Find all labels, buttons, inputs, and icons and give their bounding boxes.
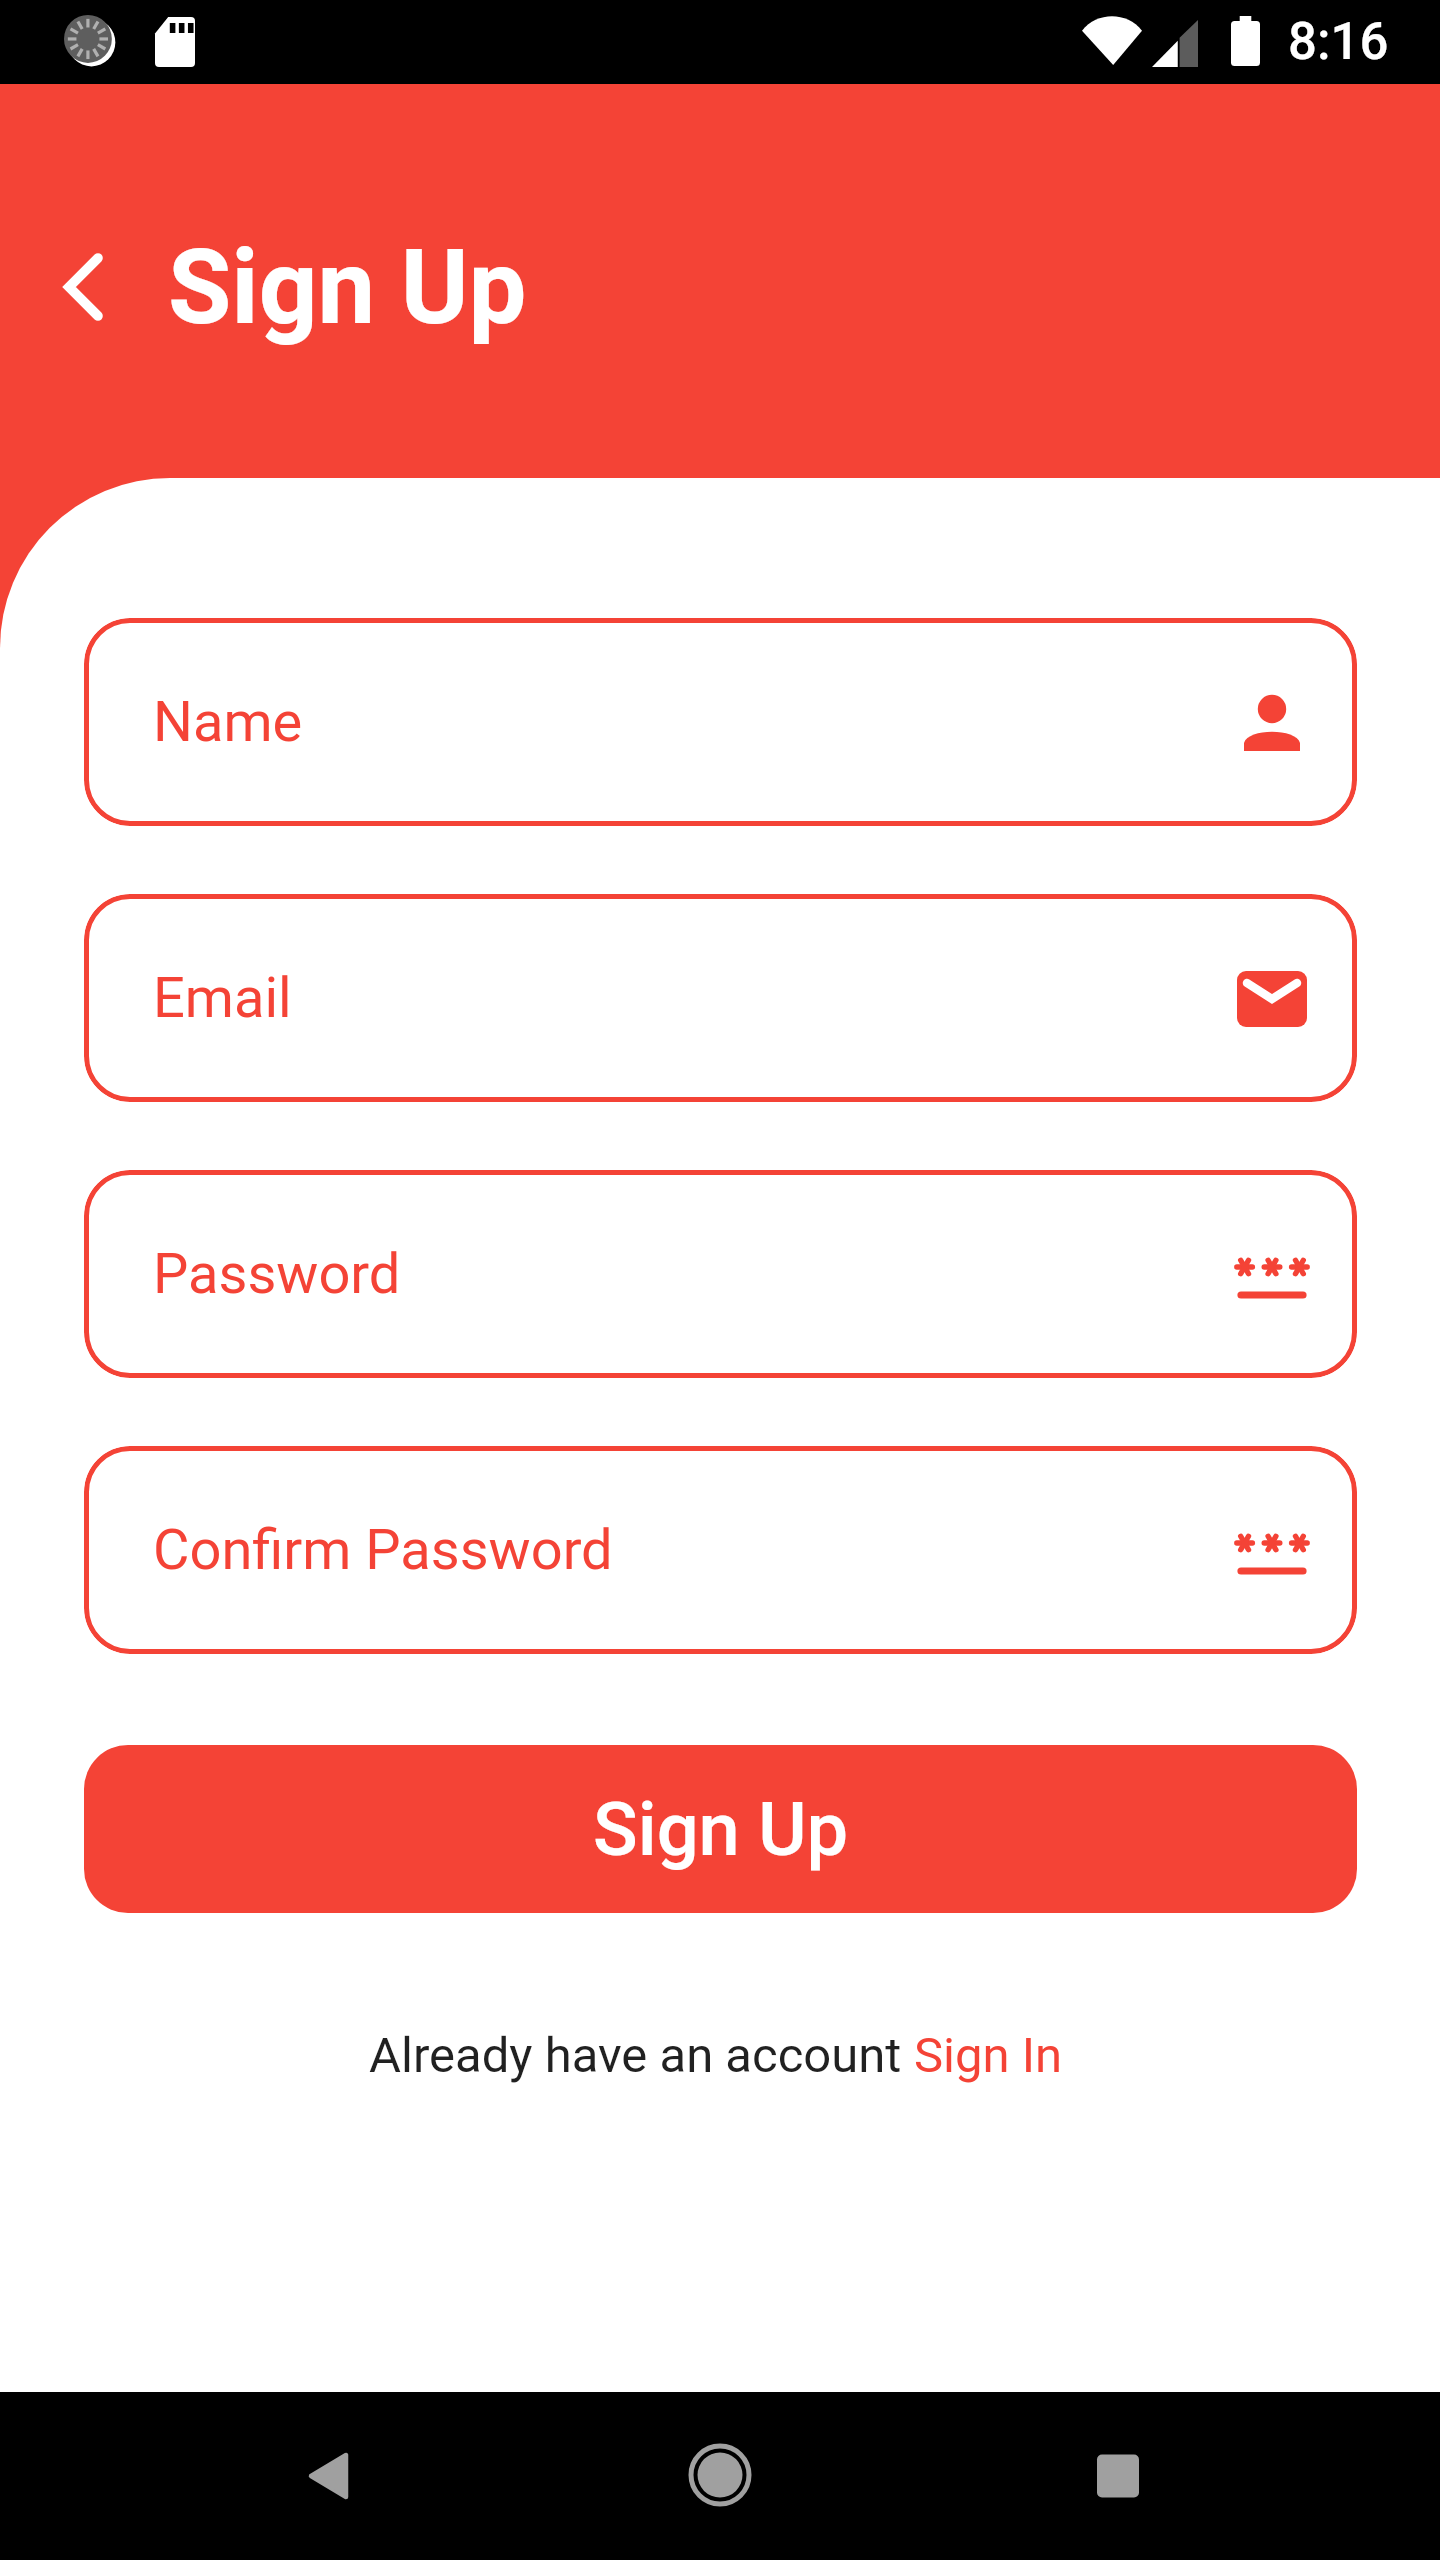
button[interactable]: Confirm Password — [84, 1446, 1357, 1654]
button[interactable]: Back — [268, 2416, 388, 2536]
button[interactable]: Back — [23, 227, 143, 347]
button[interactable]: Password — [84, 1170, 1357, 1378]
staticText: Already have an account — [369, 2027, 914, 2084]
button[interactable]: Home — [660, 2415, 780, 2535]
staticText: 8:16 — [1288, 12, 1389, 72]
staticText: Confirm Password — [153, 1517, 613, 1583]
staticText: Email — [153, 965, 292, 1031]
staticText: Password — [153, 1241, 401, 1307]
staticText: Sign Up — [593, 1786, 849, 1873]
button[interactable]: Email — [84, 894, 1357, 1102]
button[interactable]: Name — [84, 618, 1357, 826]
staticText: Sign In — [914, 2027, 1063, 2084]
button[interactable]: Sign In — [914, 2027, 1063, 2084]
staticText: Sign Up — [168, 227, 527, 348]
staticText: Name — [153, 689, 303, 755]
button[interactable]: Recents — [1058, 2416, 1178, 2536]
button[interactable]: Sign Up — [84, 1745, 1357, 1913]
